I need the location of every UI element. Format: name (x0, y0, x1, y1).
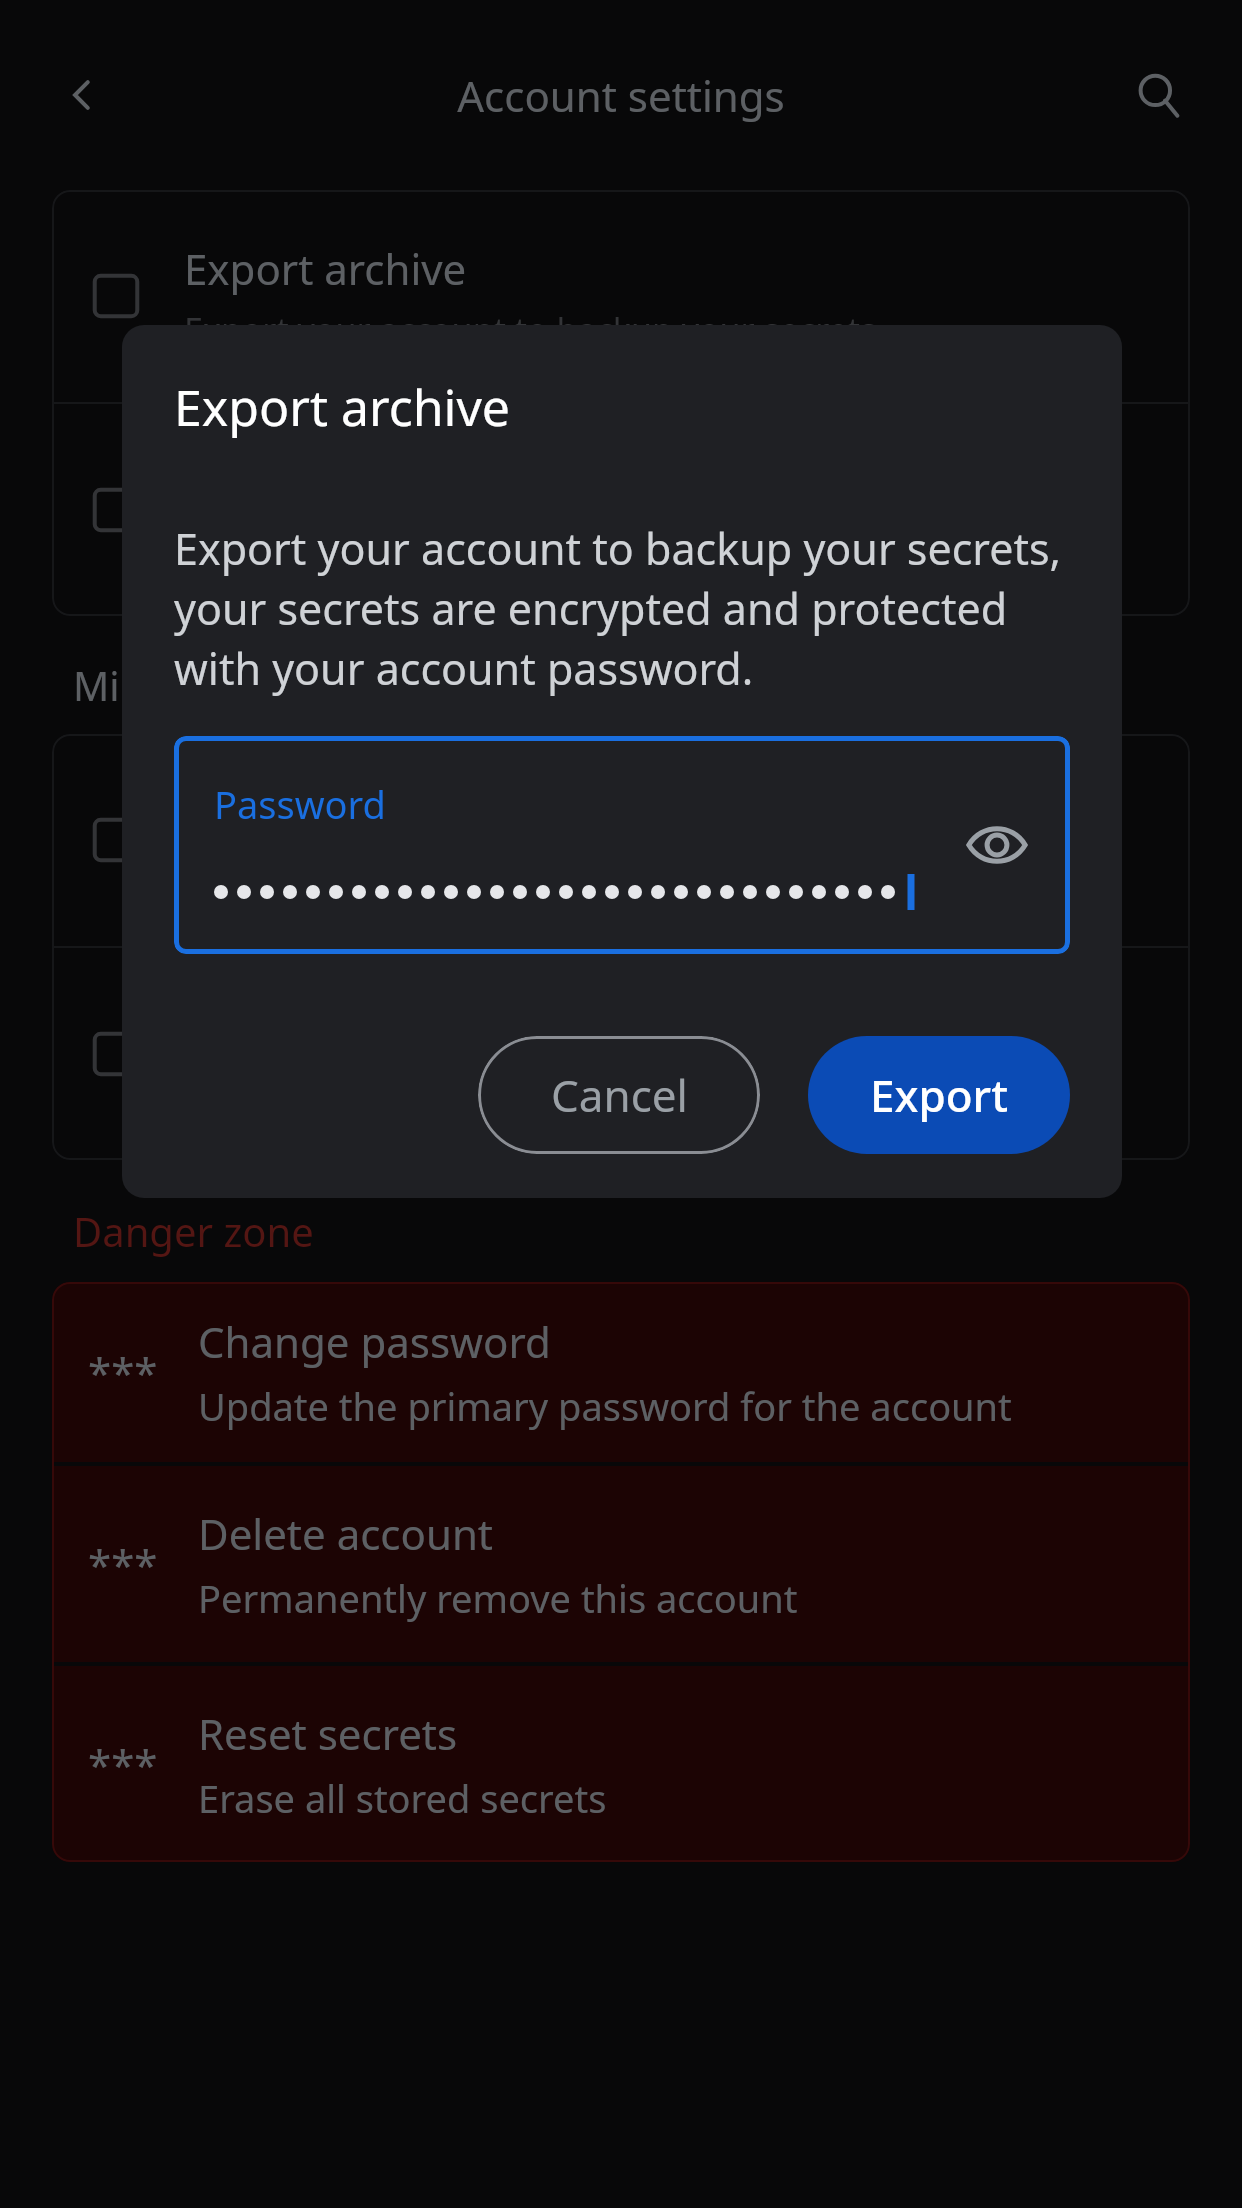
staticText: Use fingerprint to unlock (184, 521, 583, 567)
button[interactable]: Theme (52, 948, 1190, 1160)
button[interactable]: Password (174, 736, 1070, 954)
staticText: Reset secrets (198, 1705, 458, 1762)
button[interactable]: Export (808, 1036, 1070, 1154)
button[interactable]: *** (52, 1466, 1190, 1662)
staticText: Export archive (184, 240, 467, 297)
staticText: Delete account (198, 1505, 494, 1562)
staticText: Change password (198, 1313, 551, 1370)
staticText: Password (214, 778, 386, 830)
staticText: Update the primary password for the acco… (198, 1380, 1012, 1432)
staticText: Export your account to backup your secre… (174, 519, 1070, 698)
button[interactable]: Search (1124, 60, 1194, 130)
staticText: Export archive (174, 373, 511, 441)
staticText: Cancel (551, 1065, 688, 1125)
staticText: Manage your account (184, 851, 532, 897)
staticText: Erase all stored secrets (198, 1772, 607, 1824)
staticText: Permanently remove this account (198, 1572, 798, 1624)
button[interactable]: *** (52, 1666, 1190, 1862)
button[interactable]: Export archive (52, 190, 1190, 402)
button[interactable]: Account (52, 734, 1190, 946)
staticText: *** (88, 1736, 158, 1793)
staticText: Export (870, 1065, 1009, 1125)
staticText: Mi (73, 658, 120, 712)
staticText: Danger zone (73, 1204, 314, 1258)
button[interactable]: *** (52, 1282, 1190, 1462)
button[interactable]: Unlock with biometrics (52, 404, 1190, 616)
button[interactable]: Cancel (478, 1036, 760, 1154)
staticText: Account settings (457, 67, 785, 124)
button[interactable]: Show password (954, 802, 1040, 888)
staticText: *** (88, 1344, 158, 1401)
staticText: Change appearance (184, 1065, 504, 1111)
button[interactable]: Back (48, 60, 118, 130)
staticText: Export your account to backup your secre… (184, 307, 877, 353)
staticText: *** (88, 1536, 158, 1593)
staticText: Account (184, 784, 344, 841)
